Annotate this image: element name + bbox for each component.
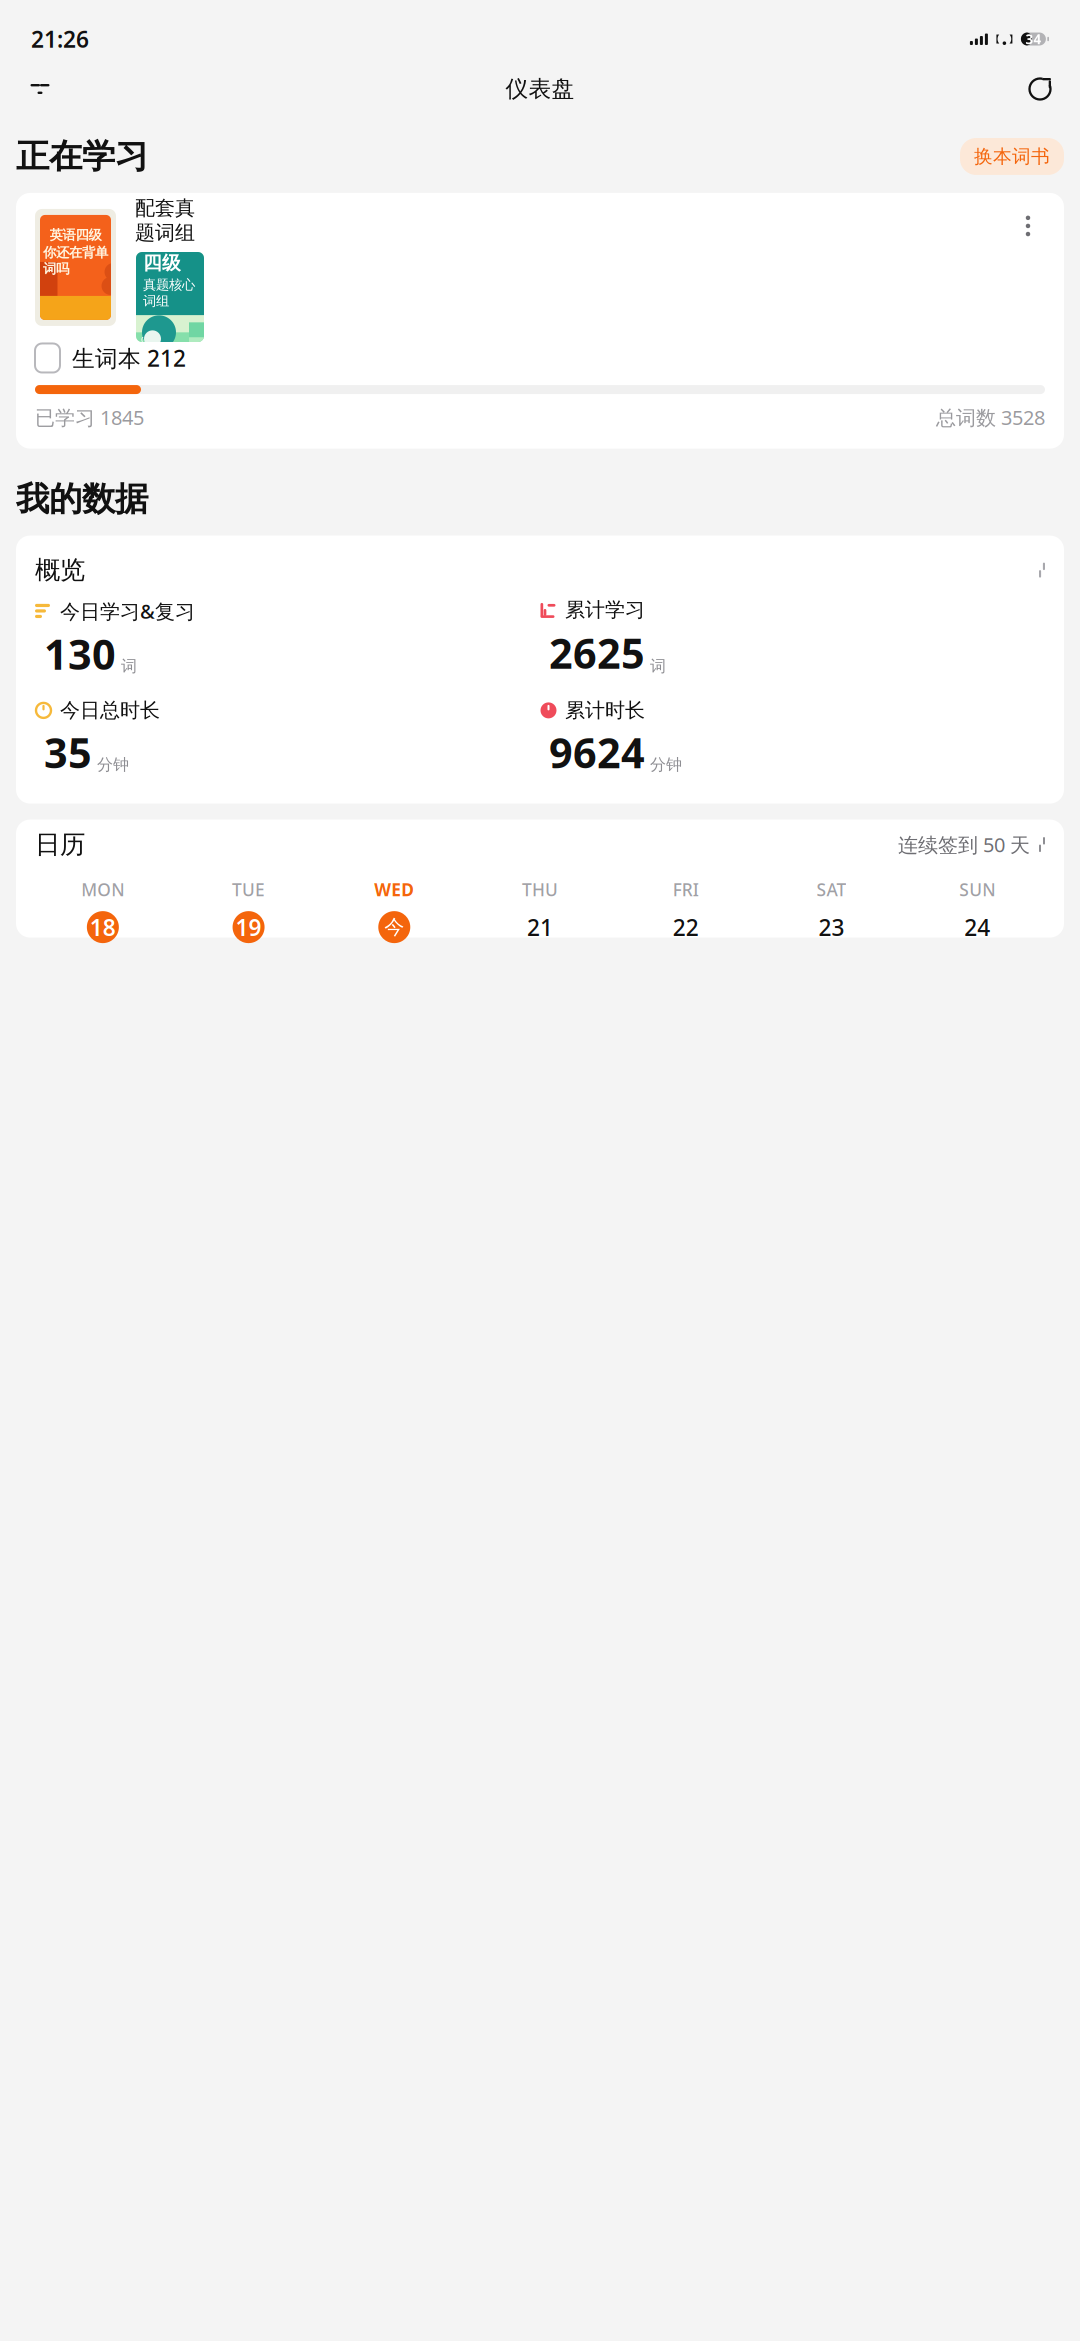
button[interactable]: More options <box>1011 209 1045 243</box>
staticText: 24 <box>964 912 990 942</box>
staticText: 仪表盘 <box>505 75 574 103</box>
staticText: 今 <box>384 915 404 939</box>
staticText: 21:26 <box>31 24 89 54</box>
staticText: 累计时长 <box>565 698 645 723</box>
staticText: 今日学习&复习 <box>60 598 195 624</box>
button[interactable]: 日历 <box>16 810 1064 870</box>
button[interactable]: 生词本 212 <box>16 329 1064 385</box>
button[interactable]: 21 <box>520 907 560 947</box>
button[interactable]: 19 <box>229 907 269 947</box>
staticText: 概览 <box>35 554 85 586</box>
button[interactable]: 英语四级 word book <box>35 209 116 326</box>
button[interactable]: 24 <box>957 907 997 947</box>
staticText: MON <box>81 878 124 901</box>
button[interactable]: Close <box>18 67 62 111</box>
staticText: 22 <box>673 912 699 942</box>
staticText: TUE <box>232 878 265 901</box>
button[interactable]: 换本词书 <box>960 138 1064 175</box>
button[interactable]: 18 <box>83 907 123 947</box>
staticText: 正在学习 <box>16 136 148 177</box>
button[interactable]: 四级真题核心词组 <box>136 252 204 342</box>
button[interactable]: 概览 <box>16 535 1064 598</box>
staticText: 四级 <box>143 252 181 275</box>
staticText: 换本词书 <box>974 145 1050 168</box>
staticText: 配套真题词组 <box>135 196 195 245</box>
staticText: THU <box>522 878 558 901</box>
staticText: C <box>141 335 146 345</box>
staticText: 9624 <box>549 725 645 780</box>
staticText: 英语四级 <box>49 227 101 243</box>
staticText: 130 <box>44 626 116 681</box>
staticText: 连续签到 50 天 <box>898 831 1030 858</box>
staticText: 词 <box>650 656 666 676</box>
staticText: WED <box>374 878 414 901</box>
staticText: 真题核心词组 <box>143 277 195 309</box>
staticText: 分钟 <box>97 755 129 775</box>
staticText: 我的数据 <box>16 479 148 519</box>
staticText: 累计学习 <box>565 598 645 622</box>
staticText: 21 <box>527 912 553 942</box>
staticText: 35 <box>44 725 92 780</box>
staticText: 日历 <box>35 829 85 860</box>
staticText: 2625 <box>549 625 645 680</box>
staticText: 23 <box>818 912 844 942</box>
staticText: 你还在背单词吗 <box>43 244 108 277</box>
staticText: 今日总时长 <box>60 698 160 723</box>
staticText: 18 <box>90 912 116 942</box>
button[interactable]: 23 <box>811 907 851 947</box>
staticText: 19 <box>236 912 262 942</box>
staticText: 已学习 1845 <box>35 404 144 431</box>
staticText: 词 <box>121 656 137 676</box>
staticText: FRI <box>673 878 699 901</box>
button[interactable]: Share <box>1018 67 1062 111</box>
staticText: 分钟 <box>650 755 682 775</box>
button[interactable]: 22 <box>666 907 706 947</box>
staticText: SUN <box>959 878 995 901</box>
staticText: 34 <box>1025 30 1041 48</box>
staticText: 生词本 212 <box>72 343 186 373</box>
staticText: SAT <box>816 878 846 901</box>
button[interactable]: 今 <box>374 907 414 947</box>
staticText: 总词数 3528 <box>936 404 1045 431</box>
